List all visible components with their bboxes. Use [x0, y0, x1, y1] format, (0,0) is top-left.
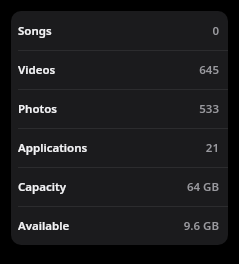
staticText: Capacity — [18, 179, 66, 195]
button[interactable]: Available — [11, 207, 228, 245]
button[interactable]: Photos — [11, 90, 228, 128]
button[interactable]: Songs — [11, 11, 228, 50]
staticText: 64 GB — [186, 179, 219, 195]
staticText: Videos — [18, 62, 56, 78]
button[interactable]: Videos — [11, 51, 228, 89]
staticText: Songs — [18, 23, 52, 39]
staticText: 9.6 GB — [183, 218, 219, 234]
staticText: Applications — [18, 140, 88, 156]
button[interactable]: Capacity — [11, 168, 228, 206]
staticText: 533 — [199, 101, 219, 117]
staticText: 0 — [212, 23, 219, 39]
staticText: 645 — [199, 62, 219, 78]
staticText: Photos — [18, 101, 57, 117]
staticText: 21 — [205, 140, 219, 156]
staticText: Available — [18, 218, 70, 234]
button[interactable]: Applications — [11, 129, 228, 167]
